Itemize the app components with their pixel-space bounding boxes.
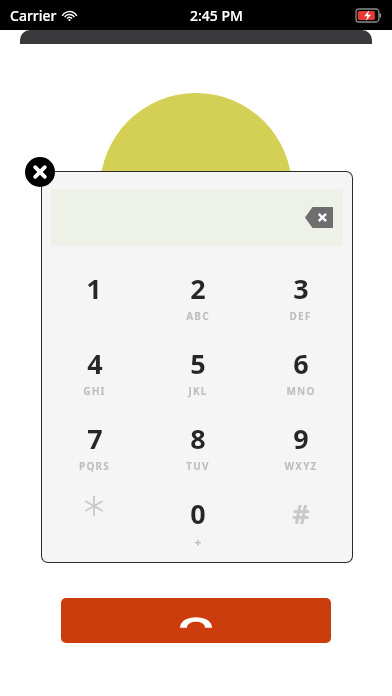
staticText: 7 <box>87 420 103 457</box>
button[interactable]: 0 <box>146 483 249 558</box>
button[interactable]: 2 <box>146 258 249 333</box>
button[interactable]: Backspace <box>305 207 333 228</box>
staticText: 8 <box>190 420 206 457</box>
staticText: JKL <box>188 384 208 398</box>
button[interactable]: 5 <box>146 333 249 408</box>
button[interactable]: 9 <box>249 408 352 483</box>
button[interactable] <box>42 483 146 558</box>
button[interactable]: # <box>249 483 352 558</box>
button[interactable]: 8 <box>146 408 249 483</box>
staticText: 0 <box>190 495 206 532</box>
button[interactable]: Close <box>25 157 55 187</box>
staticText: DEF <box>289 309 312 323</box>
button[interactable]: 6 <box>249 333 352 408</box>
staticText: 2:45 PM <box>190 6 243 25</box>
staticText: TUV <box>186 459 210 473</box>
button[interactable]: 3 <box>249 258 352 333</box>
button[interactable]: 7 <box>42 408 146 483</box>
staticText: 3 <box>293 270 309 307</box>
staticText: 4 <box>87 345 103 382</box>
staticText: + <box>194 534 203 550</box>
button[interactable]: 1 <box>42 258 146 333</box>
staticText: WXYZ <box>284 459 318 473</box>
staticText: PQRS <box>79 459 110 473</box>
staticText: 9 <box>293 420 309 457</box>
button[interactable]: Call <box>61 598 331 643</box>
staticText: MNO <box>286 384 316 398</box>
button[interactable]: 4 <box>42 333 146 408</box>
staticText: # <box>292 495 310 532</box>
staticText: GHI <box>83 384 106 398</box>
staticText: 2 <box>190 270 206 307</box>
staticText: 1 <box>86 270 102 307</box>
staticText: 5 <box>190 345 206 382</box>
staticText: Carrier <box>10 6 57 25</box>
staticText: ABC <box>186 309 210 323</box>
staticText: 6 <box>293 345 309 382</box>
